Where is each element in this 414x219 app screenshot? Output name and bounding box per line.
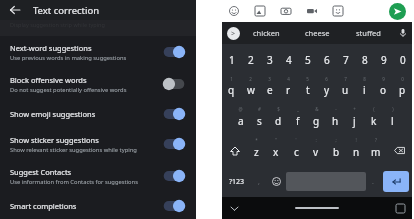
button[interactable]: ( <box>364 104 383 135</box>
button[interactable]: 1 <box>222 74 241 104</box>
button[interactable]: Voice input <box>394 22 412 44</box>
staticText: , <box>258 177 260 187</box>
button[interactable]: Camera <box>277 2 295 20</box>
button[interactable]: # <box>250 104 269 135</box>
staticText: z <box>254 145 259 159</box>
staticText: d <box>275 114 282 128</box>
button[interactable]: 3 <box>260 44 279 74</box>
button[interactable]: Sticker <box>329 2 347 20</box>
button[interactable]: ; <box>326 135 346 166</box>
button[interactable]: Backspace <box>386 135 412 166</box>
button[interactable]: & <box>307 104 326 135</box>
button[interactable]: 4 <box>279 74 298 104</box>
button[interactable]: Block offensive words <box>0 68 196 100</box>
button[interactable]: On <box>162 168 186 184</box>
button[interactable]: Enter <box>383 171 409 192</box>
staticText: 9 <box>382 76 385 82</box>
staticText: : <box>315 137 317 143</box>
staticText: y <box>324 83 330 97</box>
button[interactable]: + <box>345 104 364 135</box>
button[interactable]: Show sticker suggestions <box>0 128 196 160</box>
staticText: + <box>353 106 356 112</box>
button[interactable]: Switch keyboard <box>388 197 412 219</box>
staticText: 0 <box>401 76 404 82</box>
button[interactable]: : <box>306 135 326 166</box>
button[interactable]: Video <box>303 2 321 20</box>
button[interactable]: Smart completions <box>0 192 196 219</box>
button[interactable]: ? <box>366 135 386 166</box>
button[interactable]: Expand <box>227 27 240 40</box>
button[interactable]: chicken <box>240 22 292 44</box>
button[interactable]: Gallery <box>251 2 269 20</box>
staticText: a <box>238 114 244 128</box>
button[interactable]: Show emoji suggestions <box>0 100 196 128</box>
button[interactable]: 8 <box>355 44 374 74</box>
button[interactable]: Send <box>389 3 406 20</box>
button[interactable]: 2 <box>241 44 260 74</box>
button[interactable]: ! <box>346 135 366 166</box>
button[interactable]: 0 <box>393 74 412 104</box>
button[interactable]: 0 <box>393 44 412 74</box>
button[interactable]: " <box>266 135 286 166</box>
button[interactable]: On <box>162 136 186 152</box>
button[interactable]: Back <box>8 3 22 17</box>
button[interactable]: $ <box>269 104 288 135</box>
button[interactable]: 8 <box>355 74 374 104</box>
button[interactable]: On <box>162 44 186 60</box>
staticText: ?123 <box>229 177 245 187</box>
button[interactable]: 9 <box>374 44 393 74</box>
staticText: 8 <box>362 53 368 67</box>
staticText: Next-word suggestions <box>10 43 92 53</box>
staticText: w <box>247 83 255 97</box>
button[interactable]: 5 <box>298 74 317 104</box>
button[interactable]: Emoji <box>266 166 286 197</box>
button[interactable]: cheese <box>292 22 343 44</box>
button[interactable]: - <box>326 104 345 135</box>
staticText: 1 <box>230 76 233 82</box>
button[interactable]: Shift <box>222 135 247 166</box>
staticText: _ <box>297 106 299 112</box>
button[interactable]: 3 <box>260 74 279 104</box>
button[interactable]: 7 <box>336 74 355 104</box>
button[interactable]: On <box>162 106 186 122</box>
staticText: c <box>294 145 299 159</box>
staticText: n <box>353 145 360 159</box>
staticText: 4 <box>286 53 292 67</box>
button[interactable]: On <box>162 198 186 214</box>
button[interactable]: Next-word suggestions <box>0 36 196 68</box>
button[interactable]: Suggest Contacts <box>0 160 196 192</box>
button[interactable]: ' <box>286 135 306 166</box>
button[interactable]: Emoji <box>225 2 243 20</box>
staticText: r <box>286 83 291 97</box>
button[interactable]: Off <box>162 76 186 92</box>
button[interactable]: 1 <box>222 44 241 74</box>
button[interactable]: @ <box>231 104 250 135</box>
staticText: # <box>258 106 261 112</box>
button[interactable]: 9 <box>374 74 393 104</box>
staticText: i <box>363 83 366 97</box>
staticText: Do not suggest potentially offensive wor… <box>10 86 127 94</box>
button[interactable]: 5 <box>298 44 317 74</box>
button[interactable]: stuffed <box>343 22 394 44</box>
staticText: h <box>332 114 339 128</box>
staticText: 7 <box>343 53 349 67</box>
staticText: @ <box>238 106 243 112</box>
button[interactable]: Hide keyboard <box>222 197 246 219</box>
staticText: Show sticker suggestions <box>10 135 99 145</box>
button[interactable]: _ <box>288 104 307 135</box>
button[interactable]: 2 <box>241 74 260 104</box>
staticText: s <box>257 114 262 128</box>
button[interactable]: 6 <box>317 74 336 104</box>
button[interactable]: 7 <box>336 44 355 74</box>
staticText: p <box>399 83 406 97</box>
staticText: Text correction <box>33 4 100 17</box>
staticText: 2 <box>248 53 254 67</box>
button[interactable]: * <box>247 135 266 166</box>
button[interactable]: ?123 <box>222 166 252 197</box>
button[interactable]: ) <box>383 104 402 135</box>
button[interactable]: 4 <box>279 44 298 74</box>
button[interactable]: 6 <box>317 44 336 74</box>
